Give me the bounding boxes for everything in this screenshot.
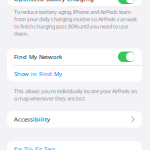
staticText: To reduce battery aging, iPhone and AirP…: [14, 8, 137, 37]
staticText: Ear Tip Fit Test: [14, 145, 55, 150]
staticText: Optimized Battery Charging: [14, 0, 94, 3]
button[interactable]: Show in Find My: [7, 65, 142, 82]
staticText: This allows you to individually locate y…: [14, 87, 137, 102]
button[interactable]: Find My Network: [7, 48, 142, 65]
button[interactable]: Ear Tip Fit Test: [7, 141, 142, 150]
button[interactable]: Optimized Battery Charging: [7, 0, 142, 7]
staticText: Find My Network: [14, 53, 62, 61]
staticText: Show in Find My: [14, 70, 62, 78]
staticText: Accessibility: [14, 115, 50, 123]
button[interactable]: Accessibility: [7, 111, 142, 127]
